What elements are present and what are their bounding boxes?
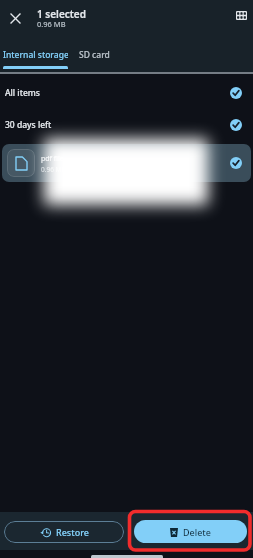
button[interactable]: Restore bbox=[4, 521, 124, 543]
button[interactable]: SD card bbox=[79, 44, 110, 66]
button[interactable]: Delete bbox=[134, 520, 247, 543]
button[interactable]: Close bbox=[4, 7, 26, 29]
staticText: Internal storage bbox=[3, 49, 68, 61]
staticText: SD card bbox=[79, 49, 110, 61]
button[interactable]: 30 days left bbox=[0, 110, 253, 140]
staticText: Restore bbox=[56, 526, 89, 538]
staticText: pdf file bbox=[41, 154, 64, 164]
button[interactable]: pdf file bbox=[2, 144, 251, 182]
button[interactable]: All items bbox=[0, 78, 253, 108]
staticText: 1 selected bbox=[37, 7, 86, 21]
button[interactable]: Internal storage bbox=[3, 44, 68, 66]
staticText: 0.96 MB bbox=[41, 165, 66, 174]
button[interactable]: Grid view bbox=[231, 5, 252, 26]
staticText: Delete bbox=[183, 526, 211, 538]
staticText: 0.96 MB bbox=[37, 19, 66, 29]
staticText: 30 days left bbox=[5, 119, 52, 131]
staticText: All items bbox=[5, 87, 40, 99]
